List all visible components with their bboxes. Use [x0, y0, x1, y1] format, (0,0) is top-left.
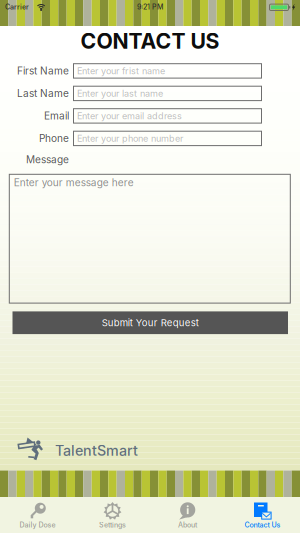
button[interactable]: About — [150, 497, 225, 533]
button[interactable]: Enter your email address — [73, 109, 261, 123]
staticText: CONTACT US — [80, 28, 219, 54]
button[interactable]: Daily Dose — [0, 497, 75, 533]
staticText: About — [178, 521, 197, 529]
button[interactable]: Submit Your Request — [12, 311, 288, 334]
staticText: Enter your phone number — [77, 133, 183, 144]
staticText: Settings — [99, 521, 126, 529]
staticText: Carrier — [5, 3, 29, 11]
staticText: 9:21 PM — [137, 3, 163, 11]
staticText: Phone — [39, 132, 69, 144]
staticText: Enter your message here — [14, 176, 134, 189]
button[interactable]: Contact Us — [225, 497, 300, 533]
staticText: Enter your last name — [77, 88, 163, 99]
button[interactable]: Settings — [75, 497, 150, 533]
staticText: Contact Us — [244, 521, 280, 529]
staticText: Submit Your Request — [102, 317, 199, 328]
staticText: Enter your frist name — [77, 65, 165, 76]
button[interactable]: Enter your phone number — [73, 131, 261, 146]
staticText: Last Name — [17, 87, 69, 99]
button[interactable]: Enter your message here — [9, 174, 290, 303]
staticText: Daily Dose — [19, 521, 55, 529]
staticText: Message — [26, 153, 69, 166]
staticText: Email — [44, 110, 69, 122]
button[interactable]: Enter your last name — [73, 86, 261, 101]
staticText: First Name — [17, 65, 69, 77]
staticText: TalentSmart — [55, 442, 138, 459]
staticText: Enter your email address — [77, 110, 182, 121]
button[interactable]: Enter your frist name — [73, 64, 261, 78]
